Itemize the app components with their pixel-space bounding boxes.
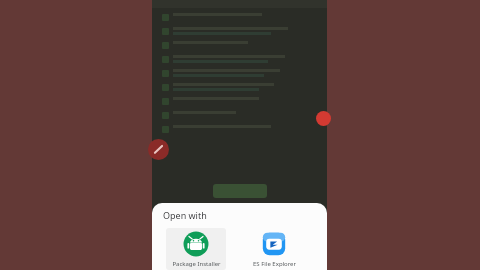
staticText: Open with	[163, 209, 207, 221]
button[interactable]	[162, 97, 317, 105]
button[interactable]: Close	[316, 111, 331, 126]
staticText: Package Installer	[172, 260, 221, 267]
button[interactable]	[162, 13, 317, 21]
button[interactable]	[162, 27, 317, 35]
button[interactable]: ES File Explorer	[244, 228, 304, 270]
button[interactable]	[162, 41, 317, 49]
button[interactable]: Package Installer	[166, 228, 226, 270]
button[interactable]	[162, 69, 317, 77]
staticText: ES File Explorer	[253, 260, 296, 267]
button[interactable]: Compose	[148, 139, 169, 160]
button[interactable]	[162, 125, 317, 133]
button[interactable]	[162, 111, 317, 119]
button[interactable]	[162, 83, 317, 91]
button[interactable]	[162, 55, 317, 63]
